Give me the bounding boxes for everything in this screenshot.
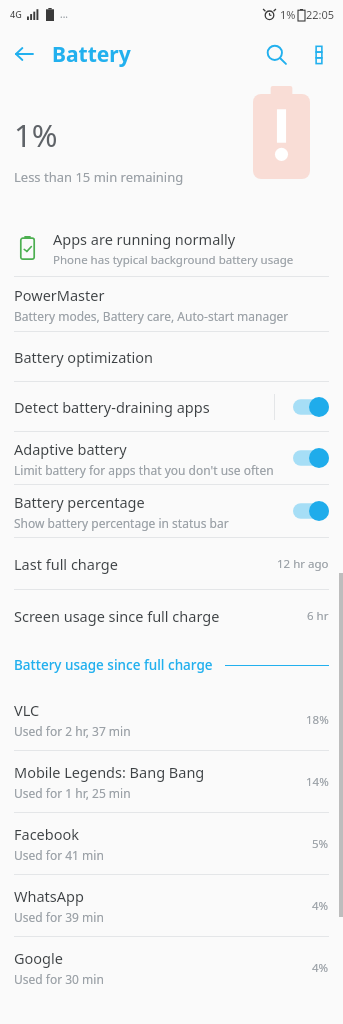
- staticText: 1%: [14, 114, 58, 156]
- staticText: 12 hr ago: [277, 556, 329, 572]
- button[interactable]: Search: [253, 31, 299, 77]
- staticText: Google: [14, 948, 63, 968]
- staticText: Battery percentage: [14, 492, 145, 512]
- button[interactable]: Back: [0, 30, 48, 78]
- button[interactable]: Mobile Legends: Bang Bang: [0, 751, 343, 812]
- staticText: Battery usage since full charge: [14, 656, 213, 674]
- staticText: Facebook: [14, 824, 80, 844]
- button[interactable]: WhatsApp: [0, 875, 343, 936]
- staticText: 6 hr: [307, 608, 329, 624]
- staticText: Battery optimization: [14, 347, 153, 367]
- staticText: Last full charge: [14, 554, 118, 574]
- button[interactable]: Battery percentage: [0, 485, 343, 537]
- staticText: Phone has typical background battery usa…: [53, 252, 294, 268]
- staticText: Apps are running normally: [53, 229, 236, 249]
- staticText: 4%: [312, 960, 329, 976]
- staticText: 5%: [312, 836, 329, 852]
- button[interactable]: VLC: [0, 689, 343, 750]
- staticText: Battery: [52, 40, 131, 69]
- staticText: ...: [60, 7, 69, 21]
- staticText: Used for 1 hr, 25 min: [14, 785, 131, 801]
- staticText: Limit battery for apps that you don't us…: [14, 462, 274, 478]
- staticText: Less than 15 min remaining: [14, 168, 184, 186]
- staticText: Used for 30 min: [14, 971, 104, 987]
- staticText: VLC: [14, 700, 40, 720]
- staticText: PowerMaster: [14, 285, 105, 305]
- button[interactable]: Screen usage since full charge: [0, 590, 343, 641]
- staticText: 4G: [10, 8, 22, 20]
- staticText: WhatsApp: [14, 886, 84, 906]
- button[interactable]: Google: [0, 937, 343, 998]
- button[interactable]: PowerMaster: [0, 277, 343, 331]
- staticText: 1%: [280, 7, 296, 22]
- button[interactable]: More options: [299, 34, 339, 74]
- staticText: Screen usage since full charge: [14, 606, 220, 626]
- staticText: Adaptive battery: [14, 439, 127, 459]
- button[interactable]: Last full charge: [0, 538, 343, 589]
- staticText: 4%: [312, 898, 329, 914]
- button[interactable]: Adaptive battery: [0, 432, 343, 484]
- staticText: Used for 39 min: [14, 909, 104, 925]
- staticText: Used for 41 min: [14, 847, 104, 863]
- button[interactable]: Facebook: [0, 813, 343, 874]
- button[interactable]: Apps are running normally: [0, 220, 343, 276]
- staticText: 22:05: [306, 7, 335, 22]
- staticText: Detect battery-draining apps: [14, 397, 210, 417]
- staticText: Battery modes, Battery care, Auto-start …: [14, 308, 289, 324]
- staticText: Show battery percentage in status bar: [14, 515, 229, 531]
- button[interactable]: Detect battery-draining apps: [0, 382, 343, 431]
- staticText: Used for 2 hr, 37 min: [14, 723, 131, 739]
- staticText: 14%: [306, 774, 329, 790]
- staticText: Mobile Legends: Bang Bang: [14, 762, 205, 782]
- staticText: 18%: [306, 712, 329, 728]
- button[interactable]: Battery optimization: [0, 332, 343, 381]
